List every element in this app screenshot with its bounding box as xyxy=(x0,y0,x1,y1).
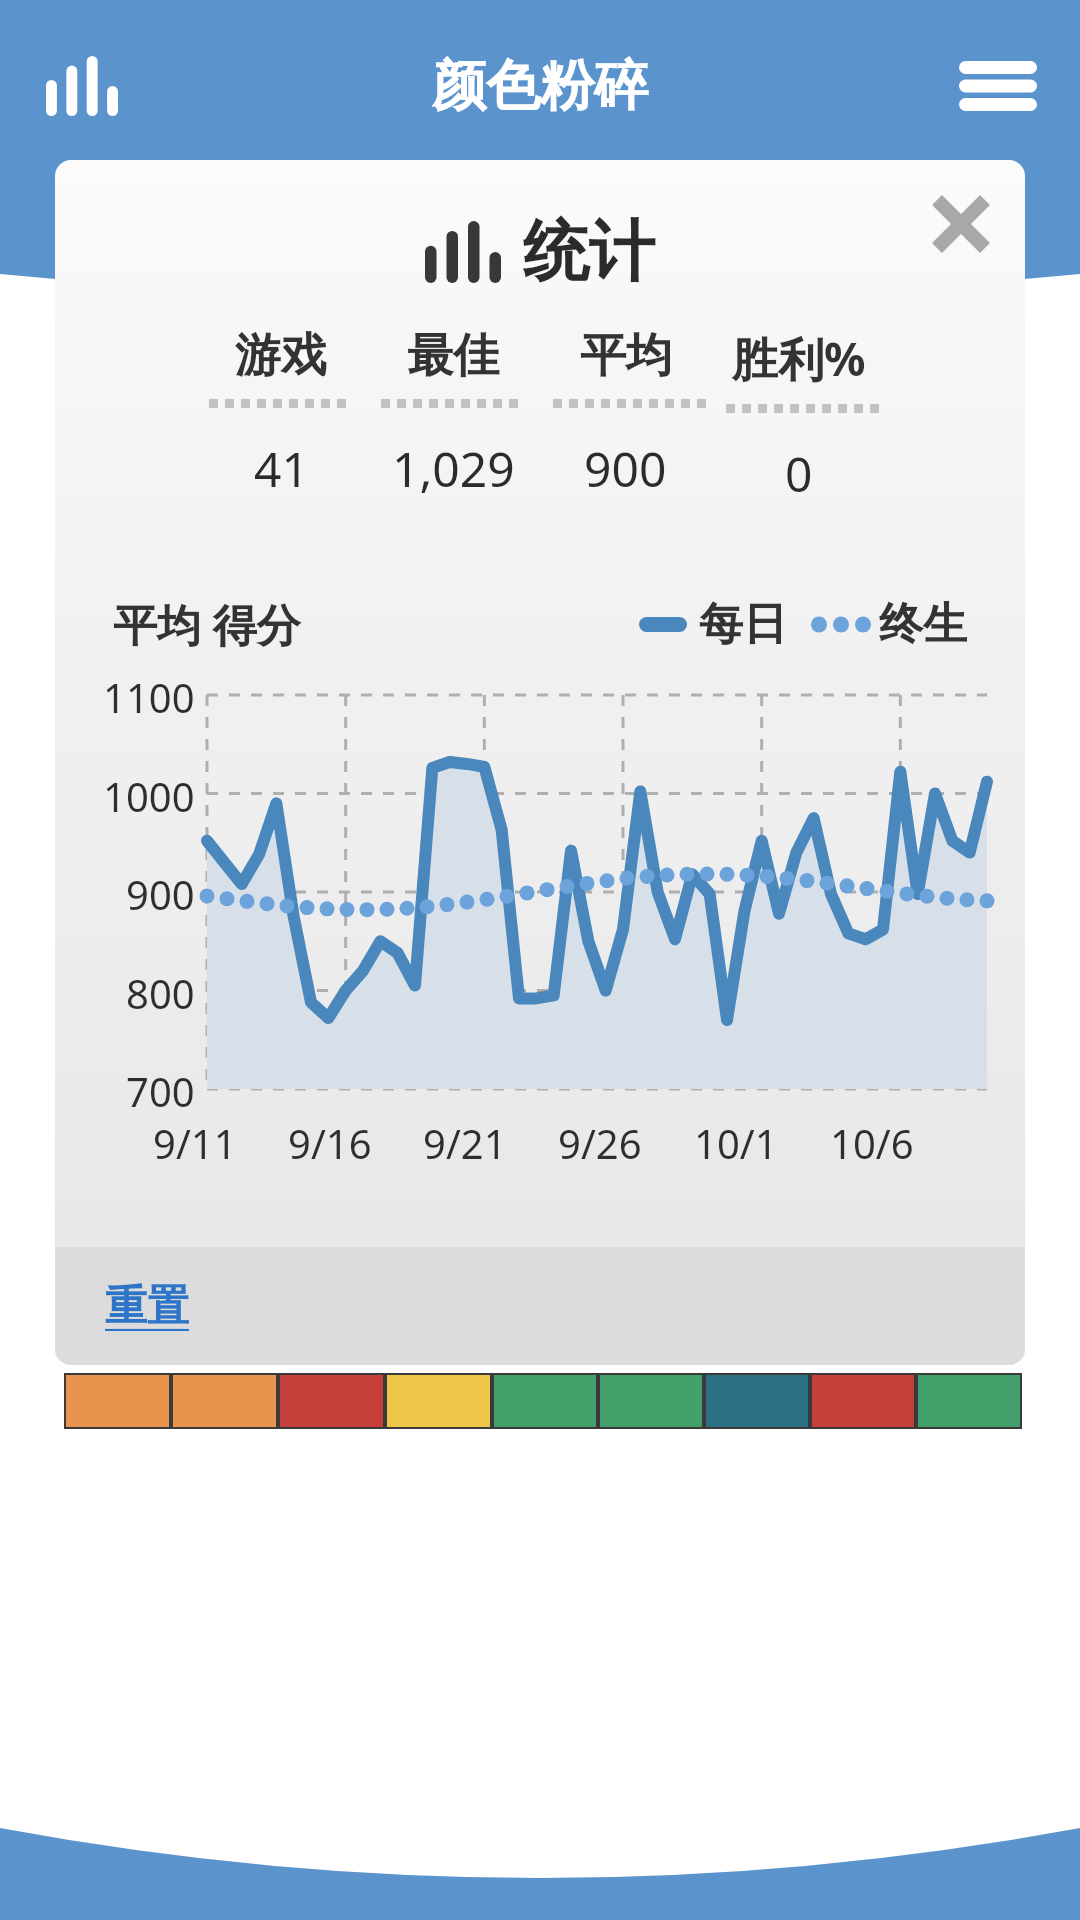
staticText: 1,029 xyxy=(392,436,515,501)
staticText: 颜色粉碎 xyxy=(132,52,948,120)
staticText: 每日 xyxy=(699,597,787,652)
staticText: 胜利% xyxy=(732,327,866,390)
staticText: 平均 xyxy=(580,327,672,385)
staticText: 9/21 xyxy=(423,1116,507,1170)
button[interactable]: Menu xyxy=(948,36,1048,136)
staticText: 游戏 xyxy=(235,327,327,385)
staticText: 9/26 xyxy=(558,1116,642,1170)
staticText: 终生 xyxy=(879,597,967,652)
button[interactable]: Statistics xyxy=(32,36,132,136)
staticText: 700 xyxy=(126,1064,195,1114)
staticText: 9/11 xyxy=(153,1116,237,1170)
staticText: 统计 xyxy=(523,210,655,293)
staticText: 900 xyxy=(126,867,195,917)
staticText: 重置 xyxy=(105,1280,189,1333)
staticText: 10/6 xyxy=(830,1116,914,1170)
staticText: 最佳 xyxy=(407,327,499,385)
staticText: 900 xyxy=(584,436,667,501)
staticText: 800 xyxy=(126,966,195,1016)
staticText: 10/1 xyxy=(694,1116,778,1170)
button[interactable]: Close xyxy=(915,178,1007,270)
staticText: 1000 xyxy=(103,769,195,819)
staticText: 平均 得分 xyxy=(113,594,301,654)
staticText: 0 xyxy=(785,441,813,506)
staticText: 9/16 xyxy=(288,1116,372,1170)
staticText: 1100 xyxy=(103,670,195,720)
button[interactable]: 重置 xyxy=(99,1270,195,1343)
staticText: 41 xyxy=(254,436,309,501)
